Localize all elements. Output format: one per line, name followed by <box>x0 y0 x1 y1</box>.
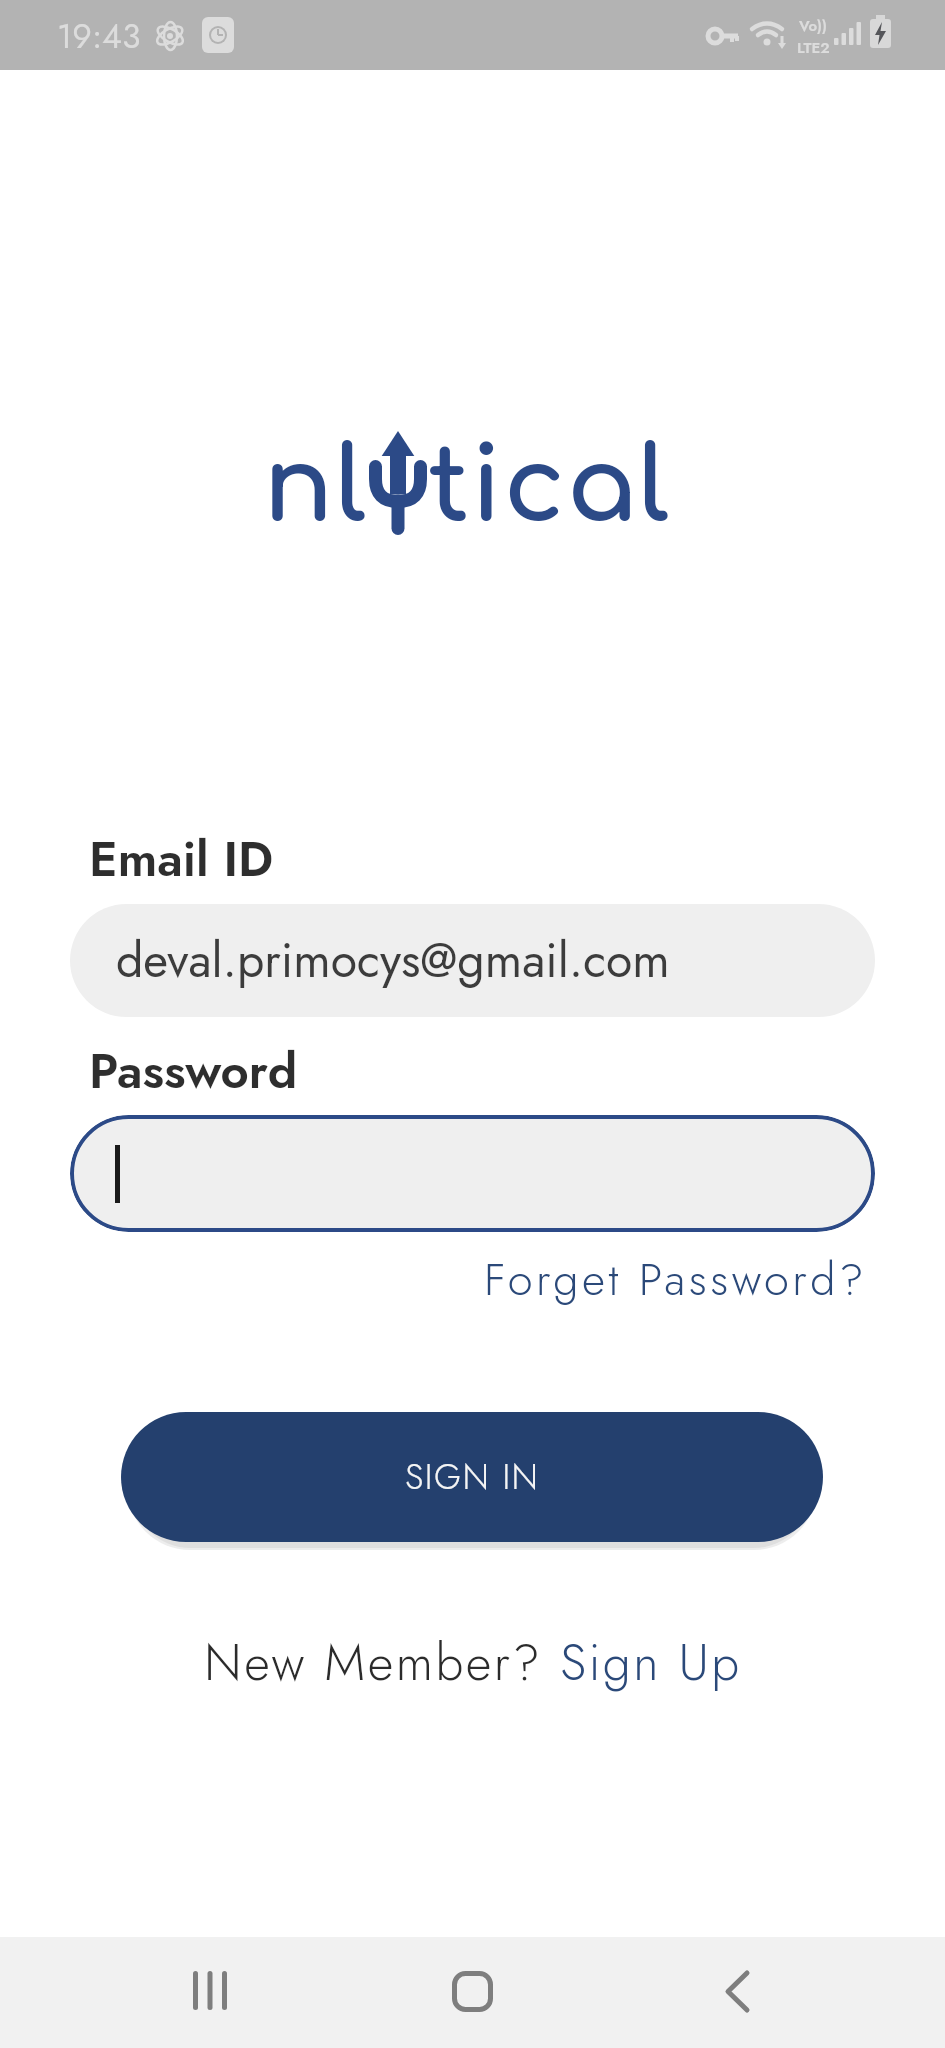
button[interactable]: deval.primocys@gmail.com <box>70 904 875 1017</box>
button[interactable] <box>193 1971 229 2011</box>
staticText: nl <box>263 430 368 545</box>
staticText: 19:43 <box>57 12 141 61</box>
button[interactable] <box>452 1971 493 2012</box>
button[interactable]: SIGN IN <box>121 1412 823 1542</box>
button[interactable] <box>724 1971 752 2013</box>
staticText: SIGN IN <box>405 1452 540 1503</box>
staticText: tical <box>428 430 671 545</box>
staticText: Password <box>89 1036 298 1107</box>
staticText: deval.primocys@gmail.com <box>116 926 670 995</box>
staticText: Vo)) <box>799 15 828 37</box>
staticText: New Member? <box>204 1626 560 1696</box>
button[interactable]: Forget Password? <box>484 1247 868 1312</box>
staticText: LTE2 <box>797 37 830 59</box>
button[interactable]: Sign Up <box>560 1626 742 1696</box>
staticText: Email ID <box>89 824 274 895</box>
button[interactable] <box>70 1115 875 1232</box>
